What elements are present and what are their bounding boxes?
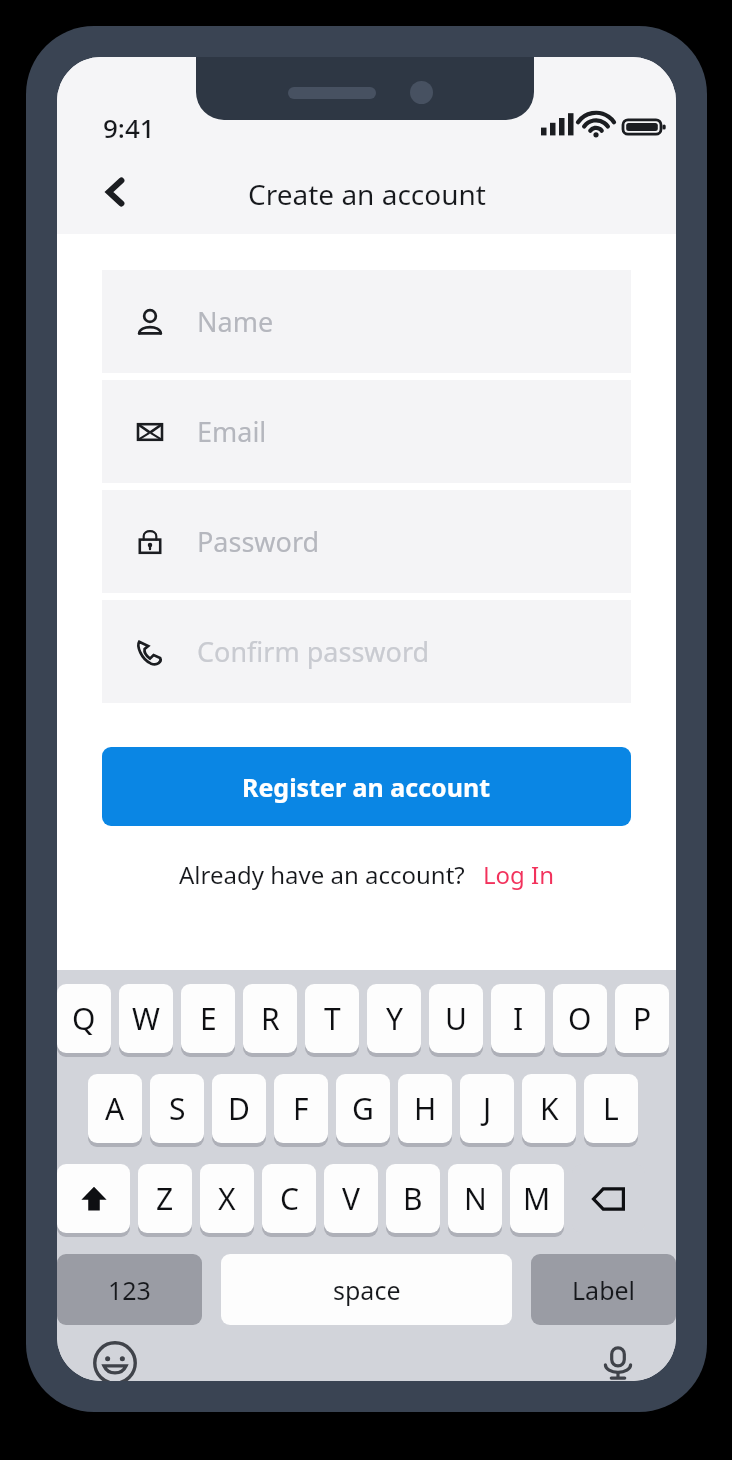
staticText: U	[445, 998, 467, 1039]
button[interactable]: O	[553, 984, 607, 1053]
staticText: O	[568, 998, 592, 1039]
staticText: B	[403, 1178, 423, 1219]
staticText: Register an account	[242, 770, 491, 804]
staticText: A	[105, 1088, 125, 1129]
staticText: E	[200, 998, 217, 1039]
button[interactable]: L	[584, 1074, 638, 1143]
staticText: D	[228, 1088, 250, 1129]
staticText: H	[414, 1088, 437, 1129]
staticText: N	[464, 1178, 487, 1219]
button[interactable]: space	[221, 1254, 512, 1325]
button[interactable]: T	[305, 984, 359, 1053]
staticText: K	[540, 1088, 559, 1129]
staticText: Z	[156, 1178, 174, 1219]
staticText: Confirm password	[197, 633, 430, 670]
button[interactable]: U	[429, 984, 483, 1053]
button[interactable]: Register an account	[102, 747, 631, 826]
button[interactable]: I	[491, 984, 545, 1053]
button[interactable]: Password	[102, 490, 631, 593]
staticText: I	[513, 998, 524, 1039]
staticText: space	[333, 1273, 401, 1307]
staticText: T	[324, 998, 341, 1039]
button[interactable]: 123	[57, 1254, 202, 1325]
staticText: J	[483, 1088, 492, 1129]
staticText: Q	[72, 998, 96, 1039]
button[interactable]: N	[448, 1164, 502, 1233]
button[interactable]: A	[88, 1074, 142, 1143]
button[interactable]: H	[398, 1074, 452, 1143]
button[interactable]: Name	[102, 270, 631, 373]
staticText: M	[523, 1178, 551, 1219]
staticText: 123	[108, 1273, 151, 1307]
button[interactable]: V	[324, 1164, 378, 1233]
staticText: X	[218, 1178, 236, 1219]
button[interactable]: Shift	[57, 1164, 130, 1233]
staticText: Already have an account?	[179, 858, 465, 891]
staticText: Log In	[483, 858, 555, 891]
button[interactable]: P	[615, 984, 669, 1053]
button[interactable]: K	[522, 1074, 576, 1143]
staticText: V	[342, 1178, 360, 1219]
button[interactable]: Log In	[483, 858, 555, 891]
button[interactable]: Back	[83, 160, 147, 224]
button[interactable]: Label	[531, 1254, 676, 1325]
button[interactable]: C	[262, 1164, 316, 1233]
staticText: L	[603, 1088, 619, 1129]
staticText: G	[352, 1088, 374, 1129]
staticText: Label	[572, 1273, 636, 1307]
staticText: W	[132, 998, 160, 1039]
button[interactable]: Z	[138, 1164, 192, 1233]
staticText: Email	[197, 413, 267, 450]
button[interactable]: Email	[102, 380, 631, 483]
staticText: S	[169, 1088, 186, 1129]
button[interactable]: J	[460, 1074, 514, 1143]
button[interactable]: E	[181, 984, 235, 1053]
button[interactable]: Y	[367, 984, 421, 1053]
button[interactable]: X	[200, 1164, 254, 1233]
button[interactable]: F	[274, 1074, 328, 1143]
staticText: P	[633, 998, 652, 1039]
staticText: R	[261, 998, 280, 1039]
button[interactable]: Emoji	[89, 1345, 141, 1381]
button[interactable]: S	[150, 1074, 204, 1143]
button[interactable]: B	[386, 1164, 440, 1233]
button[interactable]: D	[212, 1074, 266, 1143]
button[interactable]: Confirm password	[102, 600, 631, 703]
button[interactable]: Q	[57, 984, 111, 1053]
staticText: F	[293, 1088, 309, 1129]
button[interactable]: R	[243, 984, 297, 1053]
staticText: Create an account	[248, 175, 486, 213]
button[interactable]: W	[119, 984, 173, 1053]
button[interactable]: Backspace	[572, 1164, 645, 1233]
staticText: Password	[197, 523, 320, 560]
button[interactable]: M	[510, 1164, 564, 1233]
button[interactable]: G	[336, 1074, 390, 1143]
staticText: C	[280, 1178, 299, 1219]
staticText: Name	[197, 303, 274, 340]
button[interactable]: Voice input	[592, 1345, 644, 1381]
staticText: 9:41	[103, 110, 155, 145]
staticText: Y	[386, 998, 403, 1039]
